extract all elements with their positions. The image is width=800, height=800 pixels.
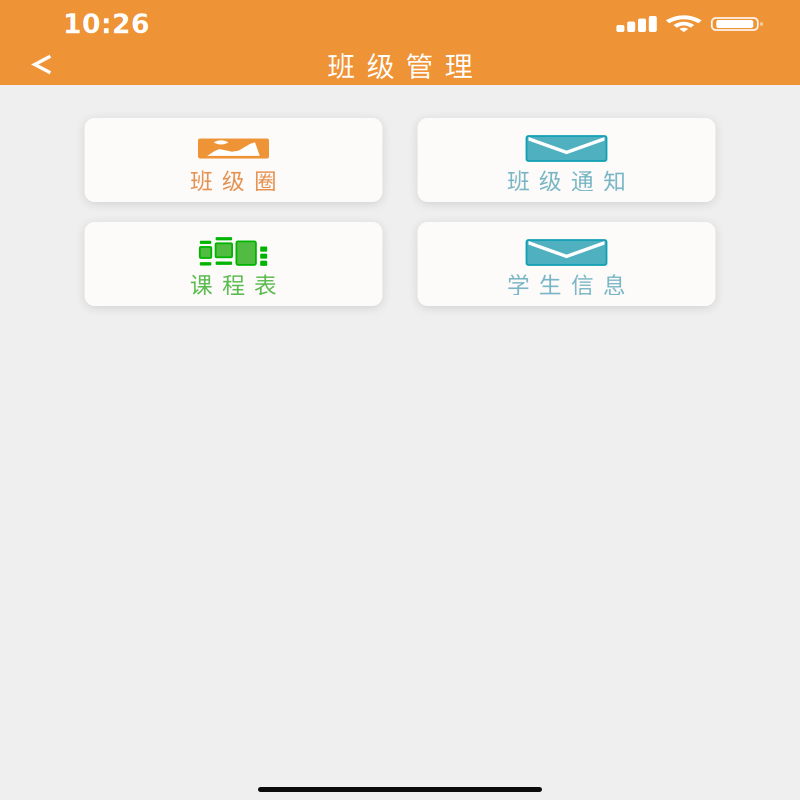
- staticText: 课程表: [190, 267, 277, 300]
- button[interactable]: Back: [0, 44, 72, 85]
- staticText: 学生信息: [507, 267, 626, 300]
- button[interactable]: 班级圈: [84, 118, 382, 202]
- button[interactable]: 学生信息: [417, 222, 715, 306]
- staticText: 班级圈: [190, 163, 277, 196]
- button[interactable]: 课程表: [84, 222, 382, 306]
- staticText: 班级管理: [327, 44, 472, 85]
- button[interactable]: 班级通知: [417, 118, 715, 202]
- staticText: 班级通知: [507, 163, 626, 196]
- staticText: 10:26: [63, 8, 150, 39]
